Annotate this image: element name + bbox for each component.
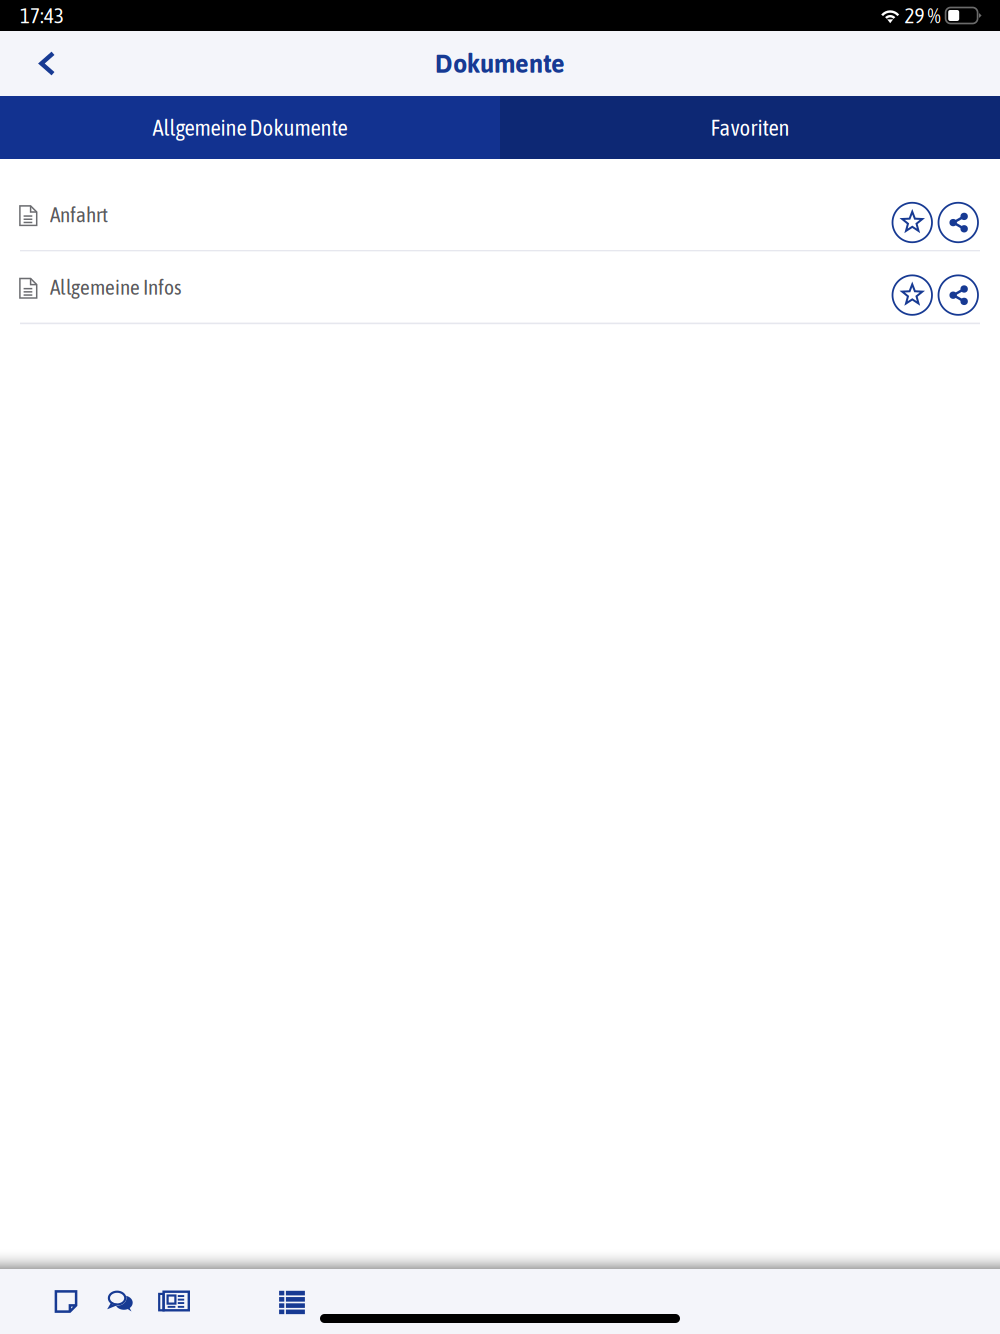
staticText: Dokumente: [435, 49, 565, 78]
button[interactable]: Notizen: [44, 1269, 88, 1334]
button[interactable]: Zu Favoriten hinzufügen: [892, 187, 932, 242]
button[interactable]: Dokumente: [270, 1269, 314, 1334]
staticText: Allgemeine Dokumente: [152, 114, 347, 140]
button[interactable]: Neuigkeiten: [152, 1269, 196, 1334]
button[interactable]: Allgemeine Infos: [0, 252, 1000, 323]
staticText: Allgemeine Infos: [50, 275, 182, 299]
button[interactable]: Zu Favoriten hinzufügen: [892, 259, 932, 315]
button[interactable]: Teilen: [938, 259, 978, 315]
staticText: 17:43: [20, 3, 64, 28]
staticText: 29 %: [905, 3, 941, 28]
button[interactable]: Teilen: [938, 187, 978, 242]
button[interactable]: Favoriten: [500, 96, 1000, 159]
button[interactable]: Anfahrt: [0, 179, 1000, 250]
button[interactable]: Nachrichten: [99, 1269, 143, 1334]
staticText: Favoriten: [710, 114, 789, 140]
staticText: Anfahrt: [50, 202, 108, 227]
button[interactable]: Allgemeine Dokumente: [0, 96, 500, 159]
button[interactable]: Zurück: [16, 31, 78, 96]
